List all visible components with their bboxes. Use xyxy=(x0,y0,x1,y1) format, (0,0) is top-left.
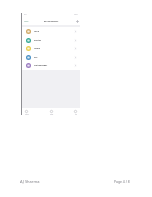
staticText: Page 4 / 8 xyxy=(114,179,130,184)
staticText: Photos xyxy=(34,39,41,42)
staticText: AJ Sharma xyxy=(20,179,40,184)
staticText: Home xyxy=(34,47,40,50)
staticText: Local xyxy=(34,30,40,33)
button[interactable]: Home xyxy=(23,108,30,116)
button[interactable]: Tools xyxy=(48,108,55,116)
staticText: Me xyxy=(75,114,77,116)
button[interactable]: Local xyxy=(22,27,80,36)
button[interactable]: Net Manager xyxy=(22,61,80,70)
button[interactable]: Photos xyxy=(22,36,80,45)
staticText: Tools xyxy=(50,114,54,116)
button[interactable]: FTP xyxy=(22,53,80,62)
button[interactable]: Home xyxy=(22,44,80,53)
button[interactable]: Add xyxy=(74,18,80,24)
staticText: ES File Explorer xyxy=(44,20,59,23)
button[interactable]: Me xyxy=(72,108,79,116)
staticText: Net Manager xyxy=(34,64,48,67)
button[interactable]: Menu xyxy=(22,20,29,22)
staticText: 9:41 xyxy=(24,14,27,16)
staticText: 100% xyxy=(74,14,78,16)
staticText: Home xyxy=(25,114,29,116)
staticText: FTP xyxy=(34,56,38,59)
